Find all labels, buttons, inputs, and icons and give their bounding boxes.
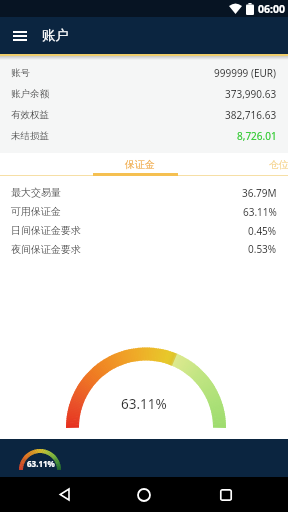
staticText: 账户余额 <box>11 88 49 100</box>
button[interactable]: 未结损益 <box>0 125 288 146</box>
staticText: 仓位 <box>269 158 288 171</box>
staticText: 63.11% <box>27 458 55 469</box>
staticText: 未结损益 <box>11 130 49 142</box>
staticText: 382,716.63 <box>225 108 277 122</box>
staticText: 有效权益 <box>11 109 49 121</box>
button[interactable] <box>44 477 84 512</box>
button[interactable]: 账号 <box>0 62 288 83</box>
staticText: 0.53% <box>248 242 277 256</box>
staticText: 保证金 <box>125 158 155 171</box>
staticText: 999999 (EUR) <box>214 66 277 80</box>
staticText: 36.79M <box>242 186 277 200</box>
button[interactable] <box>6 17 34 54</box>
staticText: 63.11% <box>243 205 277 219</box>
staticText: 0.45% <box>248 224 277 238</box>
button[interactable]: 63.11% <box>0 439 288 477</box>
button[interactable]: 日间保证金要求 <box>0 221 288 240</box>
button[interactable] <box>124 477 164 512</box>
button[interactable]: 账户余额 <box>0 83 288 104</box>
staticText: 夜间保证金要求 <box>11 243 81 256</box>
button[interactable]: 保证金 <box>93 153 178 175</box>
button[interactable]: 仓位 <box>250 153 288 175</box>
staticText: 日间保证金要求 <box>11 224 81 237</box>
staticText: 06:00 <box>258 2 285 16</box>
button[interactable]: 最大交易量 <box>0 183 288 202</box>
staticText: 373,990.63 <box>225 87 277 101</box>
staticText: 可用保证金 <box>11 205 61 218</box>
staticText: 8,726.01 <box>237 129 277 143</box>
staticText: 最大交易量 <box>11 186 61 199</box>
button[interactable] <box>206 477 246 512</box>
staticText: 账号 <box>11 67 30 79</box>
button[interactable]: 有效权益 <box>0 104 288 125</box>
button[interactable]: 夜间保证金要求 <box>0 240 288 258</box>
staticText: 63.11% <box>121 395 167 412</box>
staticText: 账户 <box>42 27 69 44</box>
button[interactable]: 可用保证金 <box>0 202 288 221</box>
